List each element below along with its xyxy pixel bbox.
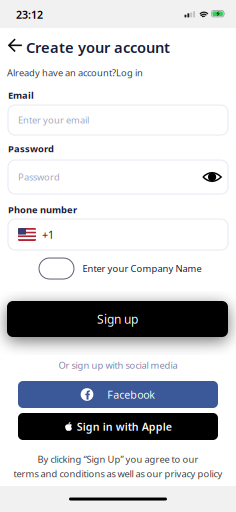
- staticText: Email: [8, 89, 34, 101]
- staticText: Password: [18, 171, 60, 183]
- staticText: +1: [42, 227, 54, 242]
- staticText: Enter your Company Name: [82, 262, 201, 275]
- staticText: Password: [8, 142, 54, 155]
- staticText: Log in: [116, 66, 143, 79]
- button[interactable]: Sign in with Apple: [18, 413, 218, 440]
- staticText: Phone number: [8, 203, 77, 216]
- staticText: Sign in with Apple: [77, 419, 172, 434]
- button[interactable]: +1: [8, 219, 228, 250]
- staticText: Facebook: [107, 387, 155, 402]
- staticText: By clicking “Sign Up” you agree to our: [37, 453, 198, 465]
- staticText: terms and conditions as well as our priv…: [13, 467, 222, 480]
- staticText: Create your account: [26, 37, 170, 57]
- staticText: Sign up: [97, 311, 138, 327]
- staticText: 23:12: [16, 7, 43, 22]
- button[interactable]: Password: [8, 160, 228, 194]
- button[interactable]: Log in: [116, 66, 143, 79]
- staticText: Or sign up with social media: [58, 359, 177, 371]
- button[interactable]: Enter your email: [8, 105, 228, 135]
- button[interactable]: Back: [7, 38, 23, 53]
- button[interactable]: Sign up: [7, 301, 228, 337]
- button[interactable]: Facebook: [18, 381, 218, 408]
- staticText: Already have an account?: [7, 66, 116, 79]
- button[interactable]: terms and conditions as well as our priv…: [13, 467, 222, 480]
- staticText: Enter your email: [18, 114, 89, 126]
- button[interactable]: Enter your Company Name: [39, 258, 201, 279]
